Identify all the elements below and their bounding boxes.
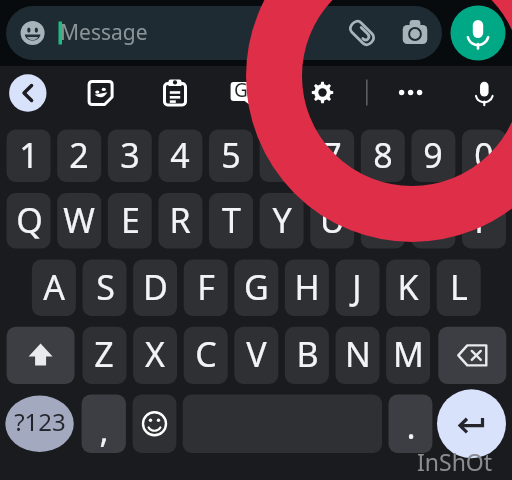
staticText: ?123 [14,405,66,438]
button[interactable]: U [310,193,354,249]
button[interactable]: 9 [411,130,455,183]
button[interactable]: Back [9,74,47,112]
button[interactable]: C [184,327,228,384]
button[interactable]: 0 [462,130,506,183]
button[interactable]: S [83,260,127,317]
button[interactable]: E [108,193,152,249]
button[interactable]: Q [7,193,51,249]
staticText: E [121,197,140,243]
button[interactable]: 8 [361,130,405,183]
staticText: T [222,197,241,243]
button[interactable]: 7 [310,130,354,183]
staticText: P [474,197,495,243]
button[interactable]: J [335,260,379,317]
button[interactable]: G [234,260,278,317]
staticText: 7 [322,132,342,178]
staticText: A [43,264,65,310]
staticText: 3 [120,132,140,178]
staticText: Message [60,18,148,47]
button[interactable]: Stickers [82,75,119,112]
staticText: S [96,264,115,310]
button[interactable]: Google search [223,75,260,112]
button[interactable]: Clipboard [157,75,194,112]
staticText: G [244,264,269,310]
button[interactable]: Message input [6,6,442,60]
button[interactable]: B [285,327,329,384]
staticText: Y [272,197,292,243]
staticText: L [450,264,468,310]
button[interactable]: Y [260,193,304,249]
button[interactable]: Enter [437,395,506,454]
button[interactable]: H [285,260,329,317]
button[interactable]: 2 [57,130,101,183]
staticText: . [406,403,416,449]
button[interactable]: 4 [158,130,202,183]
staticText: 2 [69,132,89,178]
staticText: M [393,331,424,377]
staticText: , [99,407,109,453]
button[interactable]: D [133,260,177,317]
staticText: R [169,197,191,243]
button[interactable]: Voice message [451,6,506,61]
staticText: B [296,331,319,377]
button[interactable]: Attach [348,19,376,47]
staticText: O [420,197,447,243]
staticText: W [63,197,95,243]
staticText: K [397,264,419,310]
button[interactable]: Symbols [5,395,74,454]
staticText: N [345,331,371,377]
button[interactable]: Emoji [20,21,45,46]
button[interactable]: Space [183,395,382,454]
staticText: U [320,197,345,243]
button[interactable]: Settings [304,75,341,112]
staticText: G [234,77,248,103]
button[interactable]: Backspace [438,327,506,384]
button[interactable]: W [57,193,101,249]
button[interactable]: Emoji keyboard [133,395,177,454]
button[interactable]: K [386,260,430,317]
staticText: C [195,331,217,377]
staticText: J [352,264,362,310]
staticText: D [143,264,168,310]
button[interactable]: T [209,193,253,249]
button[interactable]: Period [389,395,433,454]
button[interactable]: 1 [7,130,51,183]
button[interactable]: N [336,327,380,384]
staticText: 8 [373,132,393,178]
button[interactable]: Voice typing [466,75,503,112]
button[interactable]: L [437,260,481,317]
staticText: 6 [272,132,292,178]
staticText: H [294,264,320,310]
button[interactable]: 5 [209,130,253,183]
button[interactable]: A [32,260,76,317]
staticText: V [246,331,267,377]
button[interactable]: F [184,260,228,317]
button[interactable]: R [158,193,202,249]
button[interactable]: P [462,193,506,249]
staticText: Z [94,331,114,377]
button[interactable]: X [133,327,177,384]
staticText: F [197,264,215,310]
staticText: InShOt [417,446,493,477]
button[interactable]: I [361,193,405,249]
button[interactable]: Camera [401,19,429,47]
button[interactable]: Z [82,327,126,384]
button[interactable]: M [386,327,430,384]
button[interactable]: Comma [82,395,126,454]
staticText: 4 [170,132,190,178]
button[interactable]: O [411,193,455,249]
button[interactable]: More options [392,75,429,112]
button[interactable]: 3 [108,130,152,183]
button[interactable]: V [234,327,278,384]
staticText: 5 [221,132,241,178]
staticText: 1 [19,132,39,178]
staticText: 9 [423,132,443,178]
staticText: Q [16,197,43,243]
staticText: X [145,331,165,377]
staticText: I [377,197,389,243]
staticText: 0 [474,132,494,178]
button[interactable]: 6 [260,130,304,183]
button[interactable]: Shift [7,327,75,384]
